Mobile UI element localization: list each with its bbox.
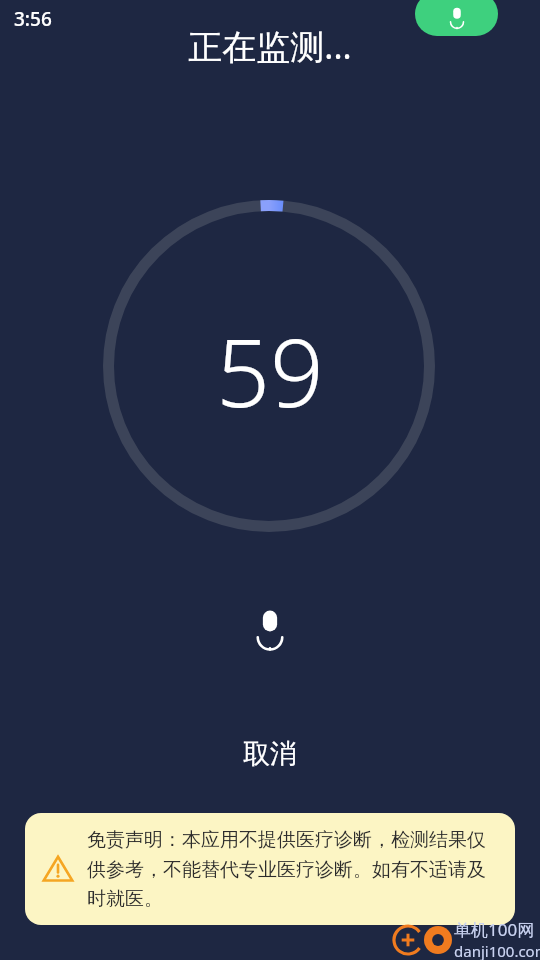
staticText: 59	[0, 307, 540, 435]
staticText: 免责声明：本应用不提供医疗诊断，检测结果仅供参考，不能替代专业医疗诊断。如有不适…	[87, 828, 491, 910]
button[interactable]: Listening microphone	[246, 605, 294, 653]
staticText: 取消	[243, 737, 297, 771]
staticText: 单机100网	[454, 918, 535, 941]
staticText: danji100.com	[454, 941, 540, 960]
button[interactable]: 取消	[0, 730, 540, 778]
staticText: 3:56	[14, 6, 52, 32]
staticText: 正在监测...	[0, 23, 540, 69]
button[interactable]: 免责声明：本应用不提供医疗诊断，检测结果仅供参考，不能替代专业医疗诊断。如有不适…	[25, 813, 515, 925]
button[interactable]: Microphone	[415, 0, 498, 36]
